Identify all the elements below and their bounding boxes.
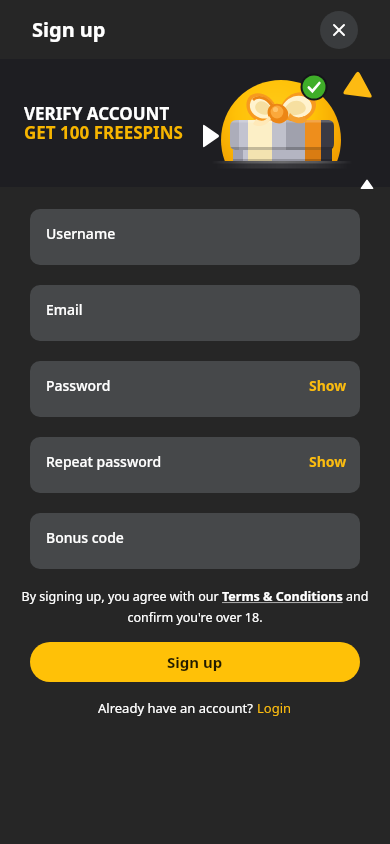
button[interactable]: Password	[30, 361, 360, 417]
button[interactable]: Show	[309, 452, 347, 471]
staticText: Password	[46, 376, 111, 395]
button[interactable]: Email	[30, 285, 360, 341]
staticText: By signing up, you agree with our Terms …	[18, 588, 372, 626]
button[interactable]: Close	[320, 11, 358, 49]
button[interactable]: VERIFY ACCOUNT GET 100 FREESPINS	[0, 59, 390, 187]
staticText: Email	[46, 300, 83, 319]
button[interactable]: Bonus code	[30, 513, 360, 569]
staticText: Sign up	[32, 16, 106, 43]
staticText: VERIFY ACCOUNT GET 100 FREESPINS	[24, 102, 183, 144]
button[interactable]: Show	[309, 376, 347, 395]
button[interactable]: Sign up	[30, 642, 360, 682]
staticText: Repeat password	[46, 452, 162, 471]
staticText: Already have an account?	[98, 699, 257, 717]
button[interactable]: Repeat password	[30, 437, 360, 493]
button[interactable]: Login	[257, 699, 292, 717]
staticText: Bonus code	[46, 528, 124, 547]
button[interactable]: Username	[30, 209, 360, 265]
staticText: Username	[46, 224, 116, 243]
staticText: Sign up	[167, 652, 223, 672]
